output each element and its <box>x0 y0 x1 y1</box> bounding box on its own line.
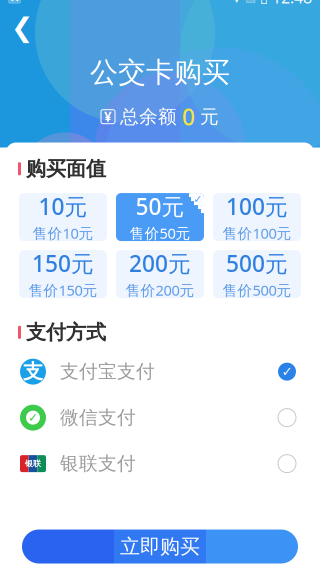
staticText: ▼ <box>232 0 241 4</box>
staticText: 微信支付 <box>60 406 136 429</box>
button[interactable]: 支 <box>6 349 314 395</box>
staticText: 售价150元 <box>28 280 97 300</box>
staticText: 100元 <box>226 191 288 221</box>
staticText: ❮ <box>11 12 33 42</box>
button[interactable]: Back <box>0 7 44 47</box>
staticText: ▯ <box>260 0 268 6</box>
staticText: 银联支付 <box>60 452 136 475</box>
staticText: 支付方式 <box>26 320 106 345</box>
staticText: 12:48 <box>272 0 312 8</box>
button[interactable]: 50元 <box>116 193 204 241</box>
button[interactable]: 500元 <box>213 250 301 298</box>
staticText: ✓ <box>193 193 202 205</box>
button[interactable]: 100元 <box>213 193 301 241</box>
staticText: 支 <box>23 359 43 384</box>
staticText: ▧ <box>245 0 256 4</box>
staticText: 售价10元 <box>32 223 93 243</box>
staticText: 10元 <box>38 191 87 221</box>
staticText: ✓ <box>28 411 38 424</box>
staticText: 200元 <box>129 248 191 278</box>
button[interactable]: 200元 <box>116 250 204 298</box>
staticText: 售价50元 <box>129 223 190 243</box>
button[interactable]: 150元 <box>19 250 107 298</box>
staticText: ¥ <box>104 108 112 125</box>
button[interactable]: 立即购买 <box>22 529 298 563</box>
staticText: 50元 <box>135 191 184 221</box>
staticText: 售价200元 <box>125 280 194 300</box>
staticText: 立即购买 <box>120 534 200 559</box>
staticText: ✓ <box>281 364 292 379</box>
staticText: 500元 <box>226 248 288 278</box>
staticText: 售价500元 <box>222 280 291 300</box>
button[interactable]: ✓ <box>6 395 314 441</box>
staticText: 公交卡购买 <box>90 55 230 90</box>
staticText: 售价100元 <box>222 223 291 243</box>
staticText: 购买面值 <box>26 156 106 181</box>
staticText: 总余额 <box>120 105 177 128</box>
staticText: 银联 <box>25 459 41 468</box>
button[interactable]: 银联 <box>6 441 314 487</box>
staticText: A <box>11 0 18 4</box>
staticText: 元 <box>200 105 219 128</box>
staticText: 150元 <box>32 248 94 278</box>
button[interactable]: 10元 <box>19 193 107 241</box>
staticText: 0 <box>182 102 195 132</box>
staticText: 支付宝支付 <box>60 360 155 383</box>
